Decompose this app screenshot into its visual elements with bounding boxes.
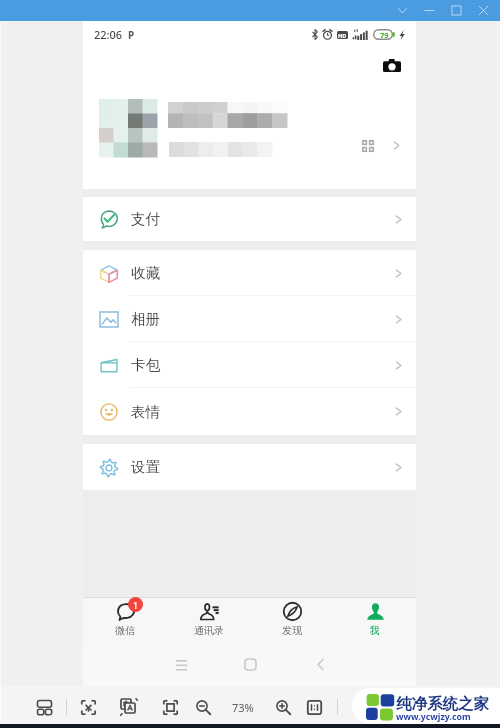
- staticText: 卡包: [131, 356, 160, 374]
- staticText: www.ycwjzy.com: [396, 711, 471, 723]
- button[interactable]: Back: [306, 643, 334, 686]
- button[interactable]: Maximize: [443, 0, 470, 21]
- button[interactable]: Zoom out: [192, 696, 214, 718]
- staticText: 我: [370, 624, 380, 637]
- button[interactable]: 通讯录: [167, 598, 250, 643]
- staticText: 73%: [232, 700, 254, 715]
- button[interactable]: Collapse: [389, 0, 416, 21]
- button[interactable]: Translate: [118, 696, 140, 718]
- staticText: 表情: [131, 403, 160, 421]
- button[interactable]: Minimize: [416, 0, 443, 21]
- button[interactable]: Zoom in: [272, 696, 294, 718]
- button[interactable]: 1: [83, 598, 167, 643]
- button[interactable]: Fullscreen: [159, 696, 181, 718]
- button[interactable]: Shake: [77, 696, 99, 718]
- button[interactable]: 我: [333, 598, 416, 643]
- button[interactable]: Multi window: [33, 696, 55, 718]
- staticText: 纯净系统之家: [396, 694, 489, 714]
- staticText: 发现: [282, 624, 302, 637]
- staticText: 相册: [131, 310, 160, 328]
- button[interactable]: 卡包: [83, 342, 416, 388]
- other: My QR code: [359, 137, 377, 155]
- button[interactable]: Recent apps: [167, 643, 195, 686]
- button[interactable]: Actual size: [303, 696, 325, 718]
- button[interactable]: Profile: [83, 96, 416, 162]
- staticText: 支付: [131, 210, 160, 228]
- staticText: 22:06: [94, 27, 123, 42]
- button[interactable]: 表情: [83, 388, 416, 435]
- staticText: 设置: [131, 458, 160, 476]
- staticText: 微信: [115, 624, 135, 637]
- staticText: 1: [133, 599, 139, 611]
- staticText: P: [128, 28, 135, 42]
- staticText: 收藏: [131, 264, 160, 282]
- button[interactable]: Close: [470, 0, 497, 21]
- button[interactable]: 设置: [83, 444, 416, 490]
- button[interactable]: 收藏: [83, 250, 416, 296]
- button[interactable]: 相册: [83, 296, 416, 342]
- button[interactable]: 发现: [250, 598, 333, 643]
- button[interactable]: 支付: [83, 197, 416, 241]
- button[interactable]: Home: [236, 643, 264, 686]
- button[interactable]: Camera: [379, 52, 405, 78]
- staticText: 通讯录: [194, 624, 224, 637]
- staticText: HD: [338, 32, 347, 39]
- staticText: 79: [380, 30, 389, 40]
